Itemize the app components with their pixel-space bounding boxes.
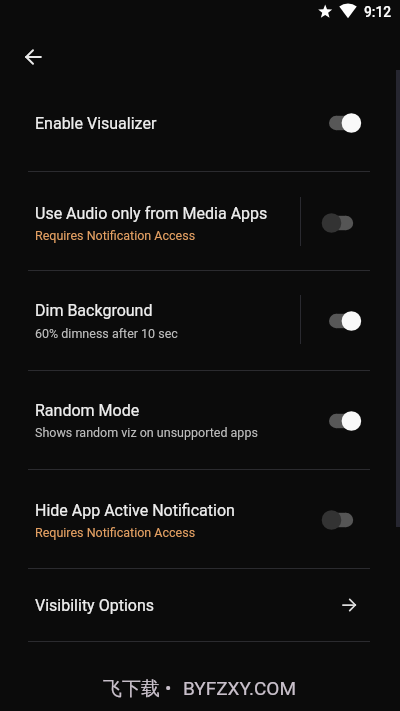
staticText: Dim Background (35, 301, 153, 320)
button[interactable]: Use Audio only from Media Apps (319, 210, 365, 236)
button[interactable]: Random Mode (319, 408, 365, 434)
button[interactable]: Dim Background (319, 308, 365, 334)
staticText: Use Audio only from Media Apps (35, 204, 268, 223)
button[interactable]: Hide App Active Notification (319, 507, 365, 533)
staticText: Visibility Options (35, 596, 154, 615)
staticText: Requires Notification Access (35, 525, 196, 540)
staticText: Requires Notification Access (35, 228, 196, 243)
staticText: 9:12 (364, 4, 392, 20)
staticText: Enable Visualizer (35, 114, 157, 133)
button[interactable]: Back (10, 33, 58, 81)
staticText: Hide App Active Notification (35, 501, 235, 520)
button[interactable]: Enable Visualizer (0, 84, 400, 171)
button[interactable]: Open Visibility Options (336, 592, 361, 617)
staticText: 60% dimness after 10 sec (35, 326, 178, 341)
staticText: Shows random viz on unsupported apps (35, 425, 258, 440)
button[interactable]: Hide App Active Notification (0, 470, 400, 568)
staticText: 飞下载 (103, 677, 160, 701)
staticText: Random Mode (35, 401, 140, 420)
button[interactable]: Dim Background (0, 271, 400, 370)
button[interactable]: Visibility Options (0, 569, 400, 641)
staticText: BYFZXY.COM (183, 677, 297, 699)
button[interactable]: Use Audio only from Media Apps (0, 172, 400, 270)
staticText: • (165, 677, 172, 699)
button[interactable]: Random Mode (0, 371, 400, 469)
button[interactable]: Enable Visualizer (319, 110, 365, 136)
